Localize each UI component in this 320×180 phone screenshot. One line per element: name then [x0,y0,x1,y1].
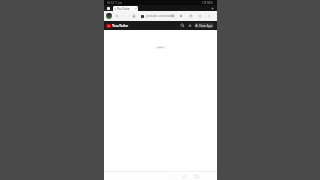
button[interactable]: Bookmark [171,14,175,18]
button[interactable]: Share [198,14,202,18]
button[interactable]: YouTube home [106,23,129,28]
staticText: youtube.com/watch [146,14,173,18]
button[interactable]: Tab switcher [104,6,112,11]
button[interactable]: Home [181,173,187,179]
button[interactable]: Site information [132,14,136,18]
button[interactable]: Reload [127,14,131,18]
button[interactable]: YouTube [113,6,138,11]
staticText: YouTube [112,23,129,28]
button[interactable]: Search [180,23,185,28]
button[interactable]: Extensions [189,14,193,18]
button[interactable]: Address bar [146,14,173,18]
button[interactable]: Downloads [179,14,183,18]
button[interactable]: Account [188,24,192,28]
staticText: YouTube [117,7,130,11]
button[interactable]: Recents [193,173,199,179]
staticText: View App [199,24,213,28]
button[interactable]: View App [194,23,214,28]
button[interactable]: Forward [121,14,125,18]
button[interactable]: New tab [211,7,214,10]
staticText: LTE 86% [202,1,213,5]
button[interactable]: Site icon [141,15,144,18]
button[interactable]: Profile [106,13,112,19]
button[interactable]: Back [115,14,119,18]
staticText: 09:52 5 Jun [107,1,123,5]
button[interactable]: More options [207,14,211,18]
